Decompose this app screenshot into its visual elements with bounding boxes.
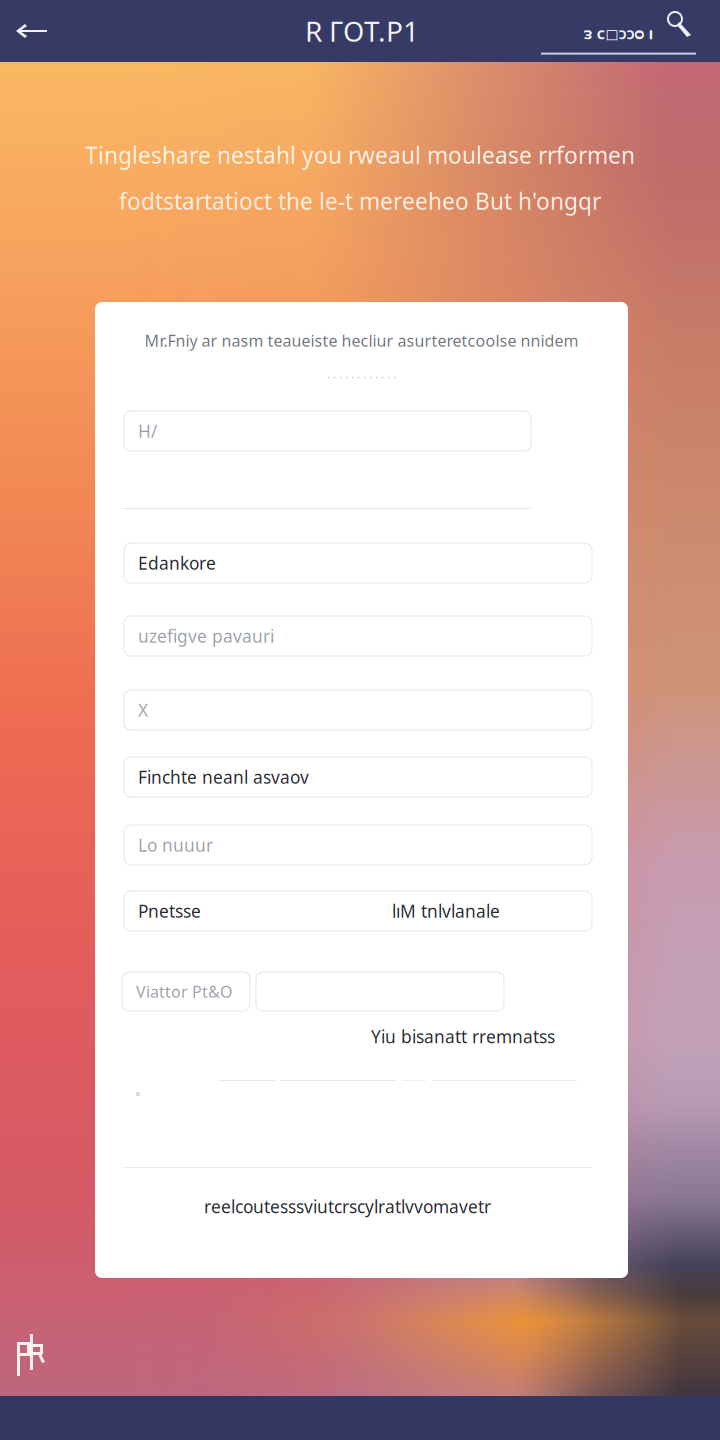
button[interactable]: X (124, 690, 592, 730)
staticText: X (138, 698, 148, 721)
button[interactable]: Back (14, 0, 52, 62)
button[interactable]: Pnetsse (124, 891, 592, 931)
button[interactable]: Edankore (124, 543, 592, 583)
staticText: · · · · · · · · · · · · (327, 370, 396, 386)
staticText: R ГОТ.Р1 (305, 12, 419, 50)
button[interactable]: Finchte neanl asvaov (124, 757, 592, 797)
staticText: H/ (138, 419, 157, 442)
staticText: Viattor Pt&O (136, 981, 232, 1002)
staticText: fodtstartatioct the le-t mereeheo But h'… (119, 186, 601, 216)
button[interactable]: Brand logo (14, 1332, 48, 1380)
staticText: Lo nuuur (138, 833, 213, 856)
staticText: Edankore (138, 551, 216, 574)
staticText: Pnetsse (138, 899, 201, 922)
staticText: reelcoutesssviutcrscylratlvvomavetr (204, 1195, 491, 1218)
button[interactable]: Search (665, 6, 699, 40)
staticText: Yiu bisanatt rremnatss (371, 1025, 555, 1048)
staticText: lıM tnlvlanale (392, 899, 500, 922)
staticText: Mr.Fniy ar nasm teaueiste hecliur asurte… (144, 330, 578, 351)
staticText: ᴈ ᴄ◻ᴐᴐᴑ ı (583, 22, 653, 44)
button[interactable]: Search field (541, 0, 696, 62)
button[interactable]: uzefigve pavauri (124, 616, 592, 656)
staticText: uzefigve pavauri (138, 624, 274, 647)
staticText: Tingleshare nestahl you rweaul moulease … (85, 140, 635, 170)
button[interactable] (256, 972, 504, 1011)
button[interactable]: Viattor Pt&O (122, 972, 250, 1011)
button[interactable]: H/ (124, 411, 531, 451)
button[interactable]: Lo nuuur (124, 825, 592, 865)
staticText: Finchte neanl asvaov (138, 765, 309, 788)
